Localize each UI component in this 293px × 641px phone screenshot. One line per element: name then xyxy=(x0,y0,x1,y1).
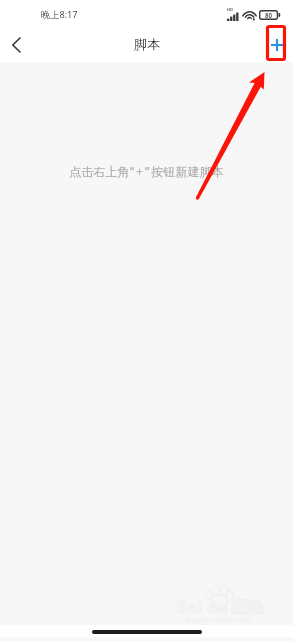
staticText: 点击右上角“+”按钮新建脚本 xyxy=(69,163,224,180)
staticText: 80 xyxy=(265,11,273,19)
staticText: HD xyxy=(227,7,233,12)
staticText: 脚本 xyxy=(134,36,161,53)
button[interactable]: Back xyxy=(0,28,34,62)
button[interactable]: Add xyxy=(266,34,288,56)
staticText: 晚上8:17 xyxy=(41,8,78,21)
